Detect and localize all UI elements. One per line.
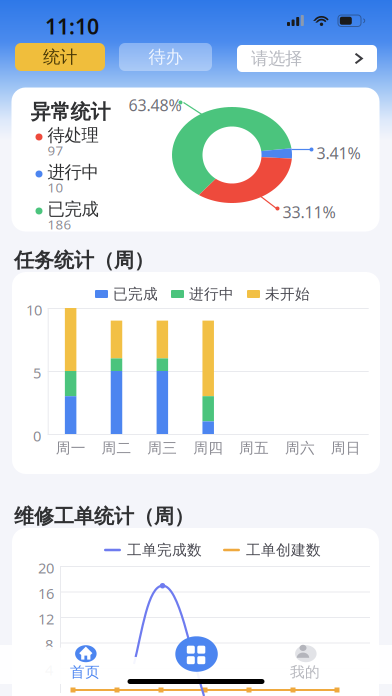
staticText: 请选择 (251, 48, 302, 69)
staticText: 周日 (331, 439, 361, 457)
staticText: 进行中 (47, 161, 98, 183)
staticText: 16 (38, 583, 54, 603)
staticText: 维修工单统计（周） (14, 504, 194, 529)
staticText: 11:10 (45, 12, 99, 40)
staticText: 工单创建数 (246, 541, 321, 559)
staticText: 进行中 (189, 285, 234, 303)
staticText: 63.48% (128, 94, 181, 116)
staticText: 33.11% (282, 201, 335, 223)
staticText: 周二 (101, 439, 131, 457)
staticText: 5 (33, 363, 41, 382)
button[interactable]: 我的 (272, 640, 340, 684)
button[interactable]: 待办 (119, 43, 212, 71)
staticText: 10 (47, 178, 63, 196)
staticText: 周三 (147, 439, 177, 457)
staticText: 已完成 (47, 198, 98, 220)
staticText: 异常统计 (30, 99, 110, 124)
staticText: 3.41% (316, 142, 360, 164)
staticText: 待处理 (47, 124, 98, 146)
button[interactable]: 首页 (52, 640, 120, 684)
staticText: 未开始 (265, 285, 310, 303)
staticText: 首页 (70, 663, 100, 681)
staticText: 周四 (193, 439, 223, 457)
staticText: 统计 (43, 46, 77, 68)
staticText: 待办 (148, 46, 182, 68)
staticText: 0 (33, 426, 41, 445)
staticText: 工单完成数 (127, 541, 202, 559)
staticText: 10 (26, 300, 42, 319)
staticText: 周六 (285, 439, 315, 457)
button[interactable]: 请选择 (237, 45, 377, 72)
staticText: 周五 (239, 439, 269, 457)
staticText: 已完成 (113, 285, 158, 303)
staticText: 8 (45, 634, 53, 654)
staticText: 周一 (56, 439, 86, 457)
staticText: 12 (38, 609, 54, 628)
button[interactable]: 统计 (15, 43, 105, 71)
staticText: 186 (47, 215, 71, 233)
staticText: 97 (47, 141, 63, 159)
button[interactable]: 应用 (175, 636, 218, 672)
staticText: 20 (38, 558, 54, 577)
staticText: 我的 (290, 663, 320, 681)
staticText: 任务统计（周） (14, 248, 154, 273)
